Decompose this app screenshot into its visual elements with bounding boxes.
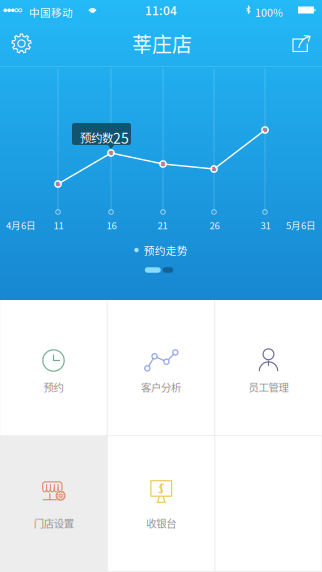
button[interactable]: 收银台 [108,436,214,571]
staticText: 预约走势 [144,242,188,258]
button[interactable]: 员工管理 [215,300,322,435]
staticText: 25 [113,127,129,148]
staticText: 31 [260,218,270,232]
staticText: 21 [157,218,167,232]
staticText: 中国移动 [29,4,73,20]
button[interactable]: Settings [0,20,45,67]
button[interactable]: 预约 [0,300,107,435]
staticText: 员工管理 [248,379,288,395]
staticText: 预约数 [80,129,113,146]
staticText: 门店设置 [34,515,74,531]
staticText: 11 [53,218,63,232]
staticText: 4月6日 [6,218,36,232]
button[interactable]: 门店设置 [0,436,107,571]
staticText: 5月6日 [286,218,316,232]
staticText: 11:04 [145,1,177,19]
staticText: 100% [255,4,283,20]
button[interactable]: Share [279,20,322,67]
button[interactable]: 客户分析 [108,300,214,435]
staticText: 预约 [43,379,63,395]
staticText: 收银台 [146,515,176,531]
staticText: 客户分析 [141,379,181,395]
staticText: 26 [209,218,219,232]
staticText: 16 [106,218,116,232]
staticText: 莘庄店 [132,29,192,58]
